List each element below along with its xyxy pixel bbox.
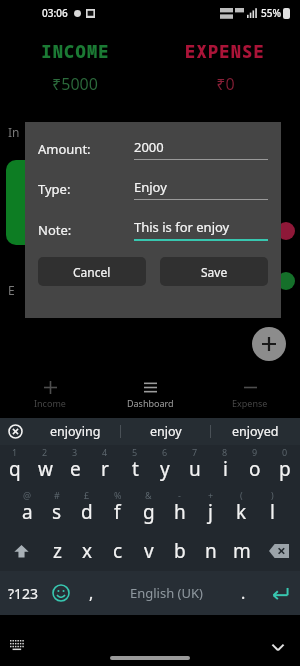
button[interactable]: £ xyxy=(72,488,102,531)
staticText: u xyxy=(189,456,201,482)
staticText: , xyxy=(89,582,94,604)
staticText: 0 xyxy=(282,446,288,458)
button[interactable]: Cancel xyxy=(38,257,146,286)
button[interactable]: c xyxy=(102,531,133,571)
staticText: 2 xyxy=(42,446,48,458)
staticText: 5 xyxy=(132,446,138,458)
button[interactable]: Enter xyxy=(260,571,300,615)
button[interactable]: , xyxy=(76,571,106,615)
button[interactable]: Add transaction xyxy=(252,327,286,361)
staticText: + xyxy=(208,489,214,501)
staticText: k xyxy=(236,499,247,525)
button[interactable]: 4 xyxy=(90,445,120,488)
staticText: l xyxy=(270,499,275,525)
staticText: i xyxy=(223,456,228,482)
button[interactable]: Hide keyboard xyxy=(268,637,288,657)
staticText: INCOME xyxy=(41,40,110,63)
button[interactable]: Backspace xyxy=(257,531,300,571)
button[interactable]: + xyxy=(195,488,226,531)
button[interactable]: ) xyxy=(257,488,288,531)
button[interactable]: Expense xyxy=(200,375,300,413)
staticText: 7 xyxy=(192,446,198,458)
other: Close suggestions xyxy=(9,425,22,438)
button[interactable]: @ xyxy=(12,488,42,531)
staticText: £ xyxy=(84,489,90,501)
staticText: p xyxy=(279,456,291,482)
button[interactable]: 1 xyxy=(0,445,30,488)
staticText: This is for enjoy xyxy=(134,218,230,236)
button[interactable]: ?123 xyxy=(0,571,46,615)
staticText: Type: xyxy=(38,180,71,198)
staticText: @ xyxy=(23,489,32,501)
staticText: enjoyed xyxy=(232,423,279,440)
button[interactable]: . xyxy=(226,571,260,615)
staticText: ?123 xyxy=(8,584,39,603)
button[interactable]: z xyxy=(42,531,72,571)
staticText: 2000 xyxy=(134,138,164,156)
button[interactable]: Save xyxy=(160,257,268,286)
staticText: % xyxy=(114,489,122,501)
staticText: s xyxy=(52,499,62,525)
button[interactable]: b xyxy=(164,531,195,571)
staticText: EXPENSE xyxy=(185,40,265,63)
button[interactable]: Emoji xyxy=(46,571,76,615)
staticText: Note: xyxy=(38,221,72,239)
button[interactable]: enjoyed xyxy=(211,418,300,445)
button[interactable]: English (UK) xyxy=(106,571,226,615)
button[interactable]: % xyxy=(102,488,133,531)
staticText: j xyxy=(208,499,213,525)
staticText: Cancel xyxy=(73,264,111,280)
button[interactable]: 6 xyxy=(150,445,180,488)
staticText: m xyxy=(233,538,251,564)
staticText: 9 xyxy=(252,446,258,458)
button[interactable]: v xyxy=(133,531,164,571)
staticText: e xyxy=(70,456,81,482)
staticText: Income xyxy=(34,397,66,409)
button[interactable]: 7 xyxy=(180,445,210,488)
button[interactable]: Shift xyxy=(0,531,42,571)
staticText: Amount: xyxy=(38,140,91,158)
button[interactable]: 0 xyxy=(270,445,300,488)
staticText: b xyxy=(174,538,186,564)
staticText: # xyxy=(54,489,60,501)
staticText: q xyxy=(9,456,21,482)
staticText: y xyxy=(160,456,170,482)
staticText: Save xyxy=(201,264,228,280)
staticText: enjoying xyxy=(50,423,101,440)
button[interactable]: enjoying xyxy=(30,418,120,445)
staticText: enjoy xyxy=(150,423,182,440)
staticText: 8 xyxy=(222,446,228,458)
staticText: & xyxy=(145,489,152,501)
button[interactable]: 8 xyxy=(210,445,240,488)
button[interactable]: enjoy xyxy=(121,418,210,445)
staticText: E xyxy=(8,282,15,298)
staticText: 3 xyxy=(72,446,78,458)
staticText: 55% xyxy=(261,6,281,20)
staticText: Dashboard xyxy=(127,397,174,409)
staticText: x xyxy=(82,538,93,564)
button[interactable]: Keyboard switcher xyxy=(8,638,26,656)
button[interactable]: Dashboard xyxy=(100,375,200,413)
button[interactable]: # xyxy=(42,488,72,531)
button[interactable]: 3 xyxy=(60,445,90,488)
staticText: - xyxy=(178,489,181,501)
button[interactable]: - xyxy=(164,488,195,531)
staticText: 4 xyxy=(102,446,108,458)
button[interactable]: 2 xyxy=(30,445,60,488)
button[interactable]: 9 xyxy=(240,445,270,488)
button[interactable]: 5 xyxy=(120,445,150,488)
button[interactable]: & xyxy=(133,488,164,531)
staticText: a xyxy=(22,499,33,525)
staticText: g xyxy=(143,499,155,525)
button[interactable]: n xyxy=(195,531,226,571)
button[interactable]: m xyxy=(226,531,257,571)
staticText: ₹5000 xyxy=(52,73,98,95)
button[interactable]: Income xyxy=(0,375,100,413)
button[interactable]: ( xyxy=(226,488,257,531)
staticText: Enjoy xyxy=(134,178,167,196)
staticText: ) xyxy=(271,489,274,501)
staticText: h xyxy=(174,499,186,525)
button[interactable]: x xyxy=(72,531,102,571)
staticText: f xyxy=(114,499,121,525)
staticText: c xyxy=(113,538,123,564)
